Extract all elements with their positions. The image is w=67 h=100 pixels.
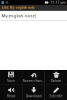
staticText: Download xyxy=(25,94,41,98)
staticText: Edit title xyxy=(49,94,62,98)
button[interactable]: Delete xyxy=(45,70,67,85)
button[interactable]: Read xyxy=(0,85,22,100)
staticText: Edit: My english note xyxy=(2,6,35,10)
button[interactable]: Revert changes xyxy=(22,70,44,85)
staticText: 11:17 pm xyxy=(51,0,66,5)
staticText: Save xyxy=(7,79,15,83)
button[interactable]: Save xyxy=(0,70,22,85)
staticText: Revert changes xyxy=(22,79,44,83)
button[interactable]: Download xyxy=(22,85,44,100)
staticText: Read xyxy=(7,94,15,98)
button[interactable]: Edit title xyxy=(45,85,67,100)
staticText: Delete xyxy=(51,79,61,83)
staticText: My english note xyxy=(1,13,34,18)
